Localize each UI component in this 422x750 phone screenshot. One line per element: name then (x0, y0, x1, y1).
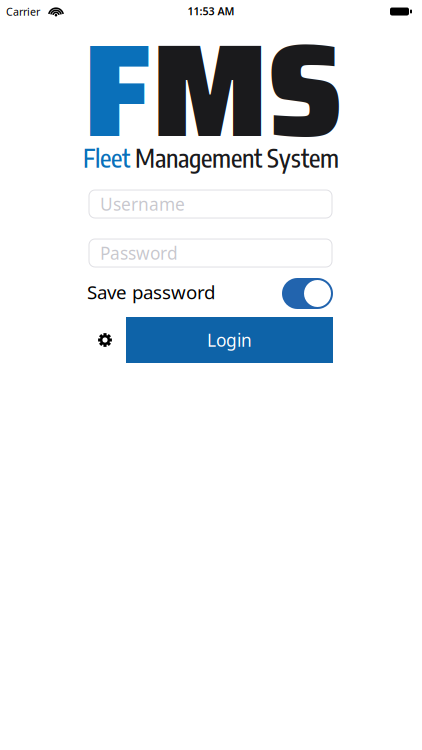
button[interactable]: Settings (96, 331, 113, 348)
staticText: MS (157, 0, 332, 193)
staticText: Management System (135, 142, 339, 173)
staticText: Password (100, 241, 178, 264)
staticText: 11:53 AM (187, 4, 234, 18)
staticText: Save password (87, 280, 215, 304)
staticText: Carrier (6, 4, 40, 19)
staticText: F (94, 0, 157, 193)
button[interactable]: Save password (282, 278, 333, 309)
staticText: Login (207, 328, 252, 351)
button[interactable]: Login (126, 317, 333, 363)
staticText: Username (100, 192, 185, 215)
staticText: Fleet (83, 142, 130, 173)
